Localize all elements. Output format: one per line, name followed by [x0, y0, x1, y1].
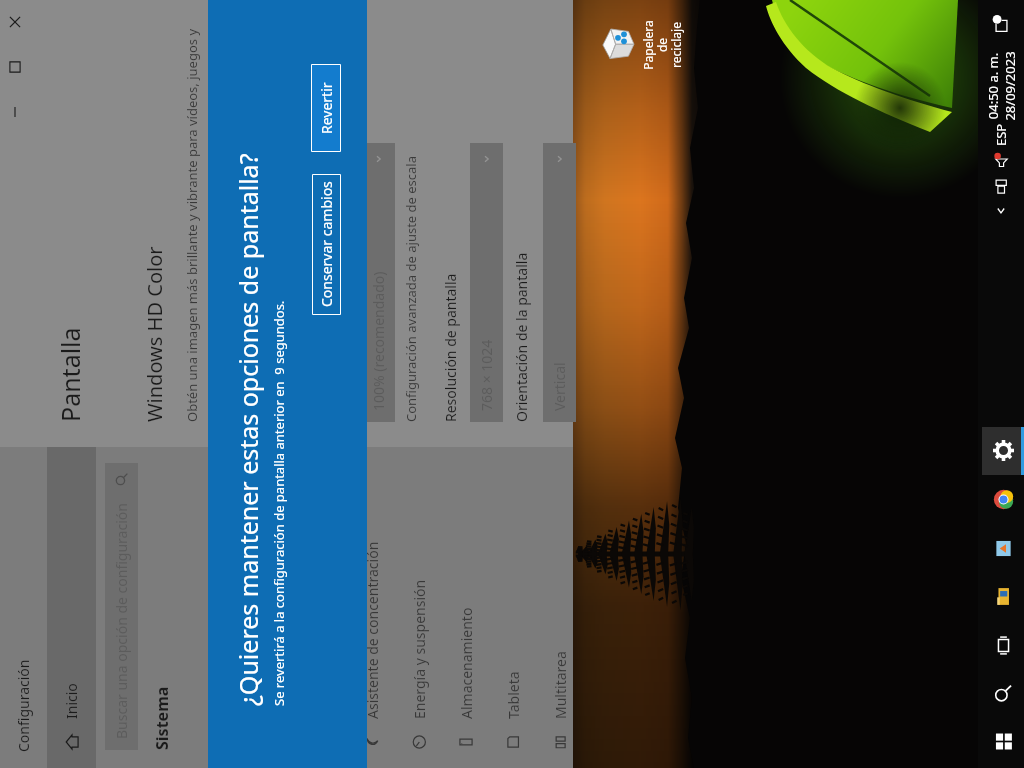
button[interactable]: Vista de tareas [978, 622, 1024, 670]
button[interactable]: Configuración [978, 427, 1024, 475]
button[interactable]: Mostrar iconos ocultos [978, 200, 1024, 222]
button[interactable]: Red [978, 174, 1024, 200]
button[interactable]: Revertir [311, 64, 341, 152]
button[interactable]: Almacenamiento [443, 447, 489, 768]
staticText: Pantalla [53, 327, 87, 422]
button[interactable]: Buscar [978, 670, 1024, 718]
staticText: Sistema [151, 686, 173, 750]
staticText: 04:50 a. m. 28/09/2023 [984, 51, 1019, 121]
staticText: Obtén una imagen más brillante y vibrant… [183, 28, 201, 422]
button[interactable]: Notificaciones [978, 0, 1024, 50]
staticText: Inicio [62, 683, 81, 719]
button[interactable]: Inicio [47, 447, 96, 768]
staticText: Configuración avanzada de ajuste de esca… [402, 155, 420, 422]
staticText: Asistente de concentración [363, 541, 382, 719]
button[interactable]: Volumen [978, 148, 1024, 174]
staticText: Buscar una opción de configuración [112, 503, 131, 739]
button[interactable]: Inicio [978, 718, 1024, 766]
staticText: Papelera de reciclaje [640, 12, 685, 78]
button[interactable]: Energía y suspensión [396, 447, 442, 768]
button[interactable]: Maximizar [0, 45, 30, 90]
button[interactable]: Google Chrome [978, 476, 1024, 524]
staticText: ESP [992, 123, 1010, 146]
button[interactable]: Tableta [490, 447, 536, 768]
staticText: Tableta [504, 671, 523, 719]
button[interactable]: Microsoft Store [978, 525, 1024, 573]
staticText: Conservar cambios [317, 181, 336, 307]
staticText: Almacenamiento [457, 607, 476, 719]
button[interactable]: Asistente de concentración [349, 447, 395, 768]
staticText: 100% (recomendado) [369, 271, 388, 411]
button[interactable]: Cerrar [0, 0, 30, 45]
button[interactable]: Explorador de archivos [978, 573, 1024, 621]
staticText: Se revertirá a la configuración de panta… [270, 300, 288, 706]
button[interactable]: Conservar cambios [312, 174, 341, 315]
staticText: Revertir [317, 82, 336, 134]
button[interactable]: Buscar una opción de configuración [105, 463, 138, 750]
staticText: Orientación de la pantalla [512, 252, 531, 422]
staticText: Multitarea [551, 651, 570, 719]
staticText: Resolución de pantalla [441, 273, 460, 422]
button[interactable]: Minimizar [0, 90, 30, 135]
staticText: Vertical [550, 362, 569, 411]
staticText: ¿Quieres mantener estas opciones de pant… [231, 153, 265, 706]
button[interactable]: 100% (recomendado) [362, 143, 395, 422]
staticText: Energía y suspensión [410, 579, 429, 719]
button[interactable]: Multitarea [537, 447, 583, 768]
button[interactable]: Papelera de reciclaje [594, 12, 686, 78]
staticText: Configuración [14, 659, 33, 752]
staticText: 768 × 1024 [477, 339, 496, 411]
button[interactable]: Fecha y hora [978, 50, 1024, 122]
staticText: Windows HD Color [141, 246, 168, 422]
button[interactable]: Idioma ESP [978, 122, 1024, 148]
